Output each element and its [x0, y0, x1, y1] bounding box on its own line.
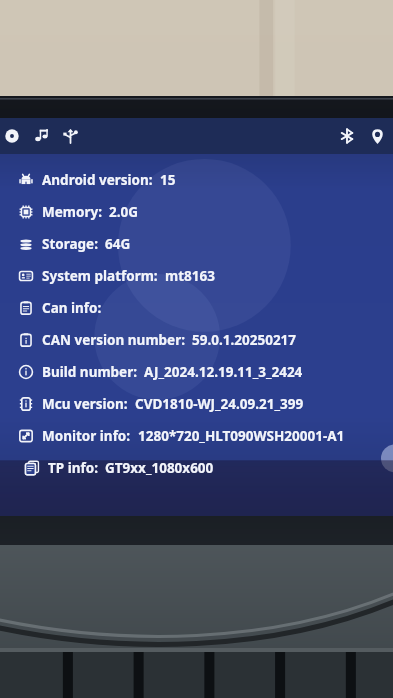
staticText: AJ_2024.12.19.11_3_2424	[144, 363, 303, 381]
button[interactable]: System platform:	[0, 260, 393, 292]
button[interactable]: Build number:	[0, 356, 393, 388]
staticText: Monitor info:	[42, 427, 131, 445]
button[interactable]: Android version:	[0, 164, 393, 196]
staticText: Storage:	[42, 235, 98, 253]
staticText: 59.0.1.20250217	[192, 331, 297, 349]
button[interactable]: TP info:	[0, 452, 393, 484]
button[interactable]: CAN version number:	[0, 324, 393, 356]
button[interactable]: Location	[365, 124, 389, 148]
staticText: TP info:	[48, 459, 98, 477]
button[interactable]: Memory:	[0, 196, 393, 228]
staticText: 1280*720_HLT090WSH20001-A1	[138, 427, 345, 445]
staticText: Android version:	[42, 171, 153, 189]
button[interactable]: Storage:	[0, 228, 393, 260]
staticText: GT9xx_1080x600	[105, 459, 214, 477]
staticText: CVD1810-WJ_24.09.21_399	[135, 395, 304, 413]
button[interactable]: Monitor info:	[0, 420, 393, 452]
button[interactable]: USB connected	[58, 124, 82, 148]
button[interactable]: Music	[29, 124, 53, 148]
staticText: 64G	[105, 235, 131, 253]
staticText: mt8163	[165, 267, 215, 285]
button[interactable]: Mcu version:	[0, 388, 393, 420]
staticText: 2.0G	[109, 203, 139, 221]
staticText: CAN version number:	[42, 331, 185, 349]
button[interactable]: Can info:	[0, 292, 393, 324]
staticText: 15	[160, 171, 176, 189]
button[interactable]: Bluetooth	[335, 124, 359, 148]
staticText: System platform:	[42, 267, 158, 285]
staticText: Mcu version:	[42, 395, 128, 413]
staticText: Can info:	[42, 299, 102, 317]
staticText: Memory:	[42, 203, 102, 221]
button[interactable]: Media	[1, 125, 23, 147]
staticText: Build number:	[42, 363, 137, 381]
